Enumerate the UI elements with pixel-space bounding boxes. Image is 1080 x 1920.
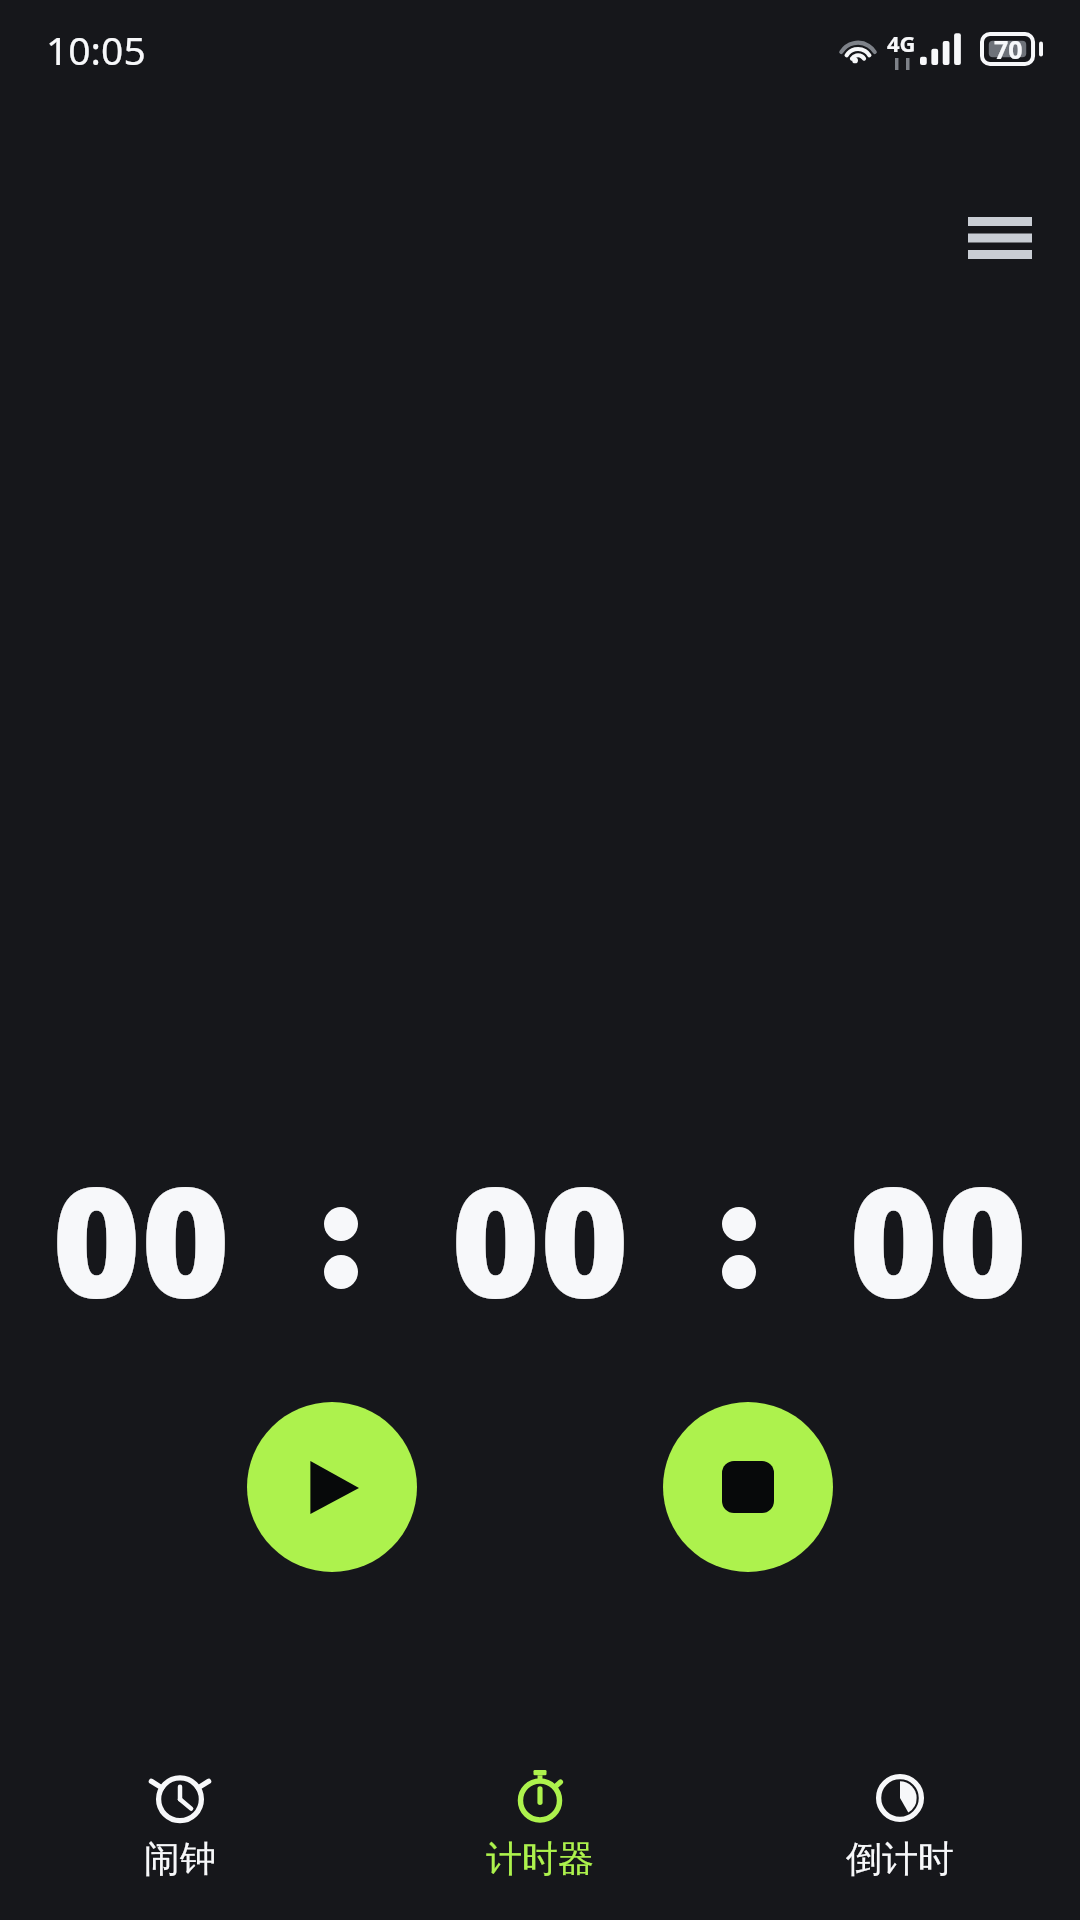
staticText: 00 xyxy=(52,1135,231,1342)
button[interactable]: Menu xyxy=(952,190,1048,286)
staticText: 00 xyxy=(451,1135,630,1342)
button[interactable]: Stop xyxy=(663,1402,833,1572)
staticText: 闹钟 xyxy=(144,1836,216,1881)
button[interactable]: 倒计时 xyxy=(720,1740,1080,1920)
staticText: 00 xyxy=(849,1135,1028,1342)
button[interactable]: Start xyxy=(247,1402,417,1572)
button[interactable]: 闹钟 xyxy=(0,1740,360,1920)
staticText: 倒计时 xyxy=(846,1836,954,1881)
staticText: 10:05 xyxy=(46,23,146,76)
staticText: 4G xyxy=(887,28,916,58)
staticText: 计时器 xyxy=(486,1836,594,1881)
staticText: 70 xyxy=(994,32,1023,66)
button[interactable]: 计时器 xyxy=(360,1740,720,1920)
